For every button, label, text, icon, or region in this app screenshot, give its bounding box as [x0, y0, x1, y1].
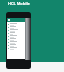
button[interactable]: Menu	[7, 18, 25, 22]
button[interactable]	[7, 38, 25, 41]
button[interactable]	[7, 26, 25, 29]
button[interactable]	[7, 32, 25, 35]
button[interactable]	[7, 29, 25, 32]
button[interactable]	[7, 35, 25, 38]
button[interactable]	[7, 44, 25, 47]
staticText: HCL Mobile	[8, 1, 30, 6]
button[interactable]	[7, 41, 25, 44]
button[interactable]	[7, 47, 25, 50]
button[interactable]	[7, 23, 25, 26]
